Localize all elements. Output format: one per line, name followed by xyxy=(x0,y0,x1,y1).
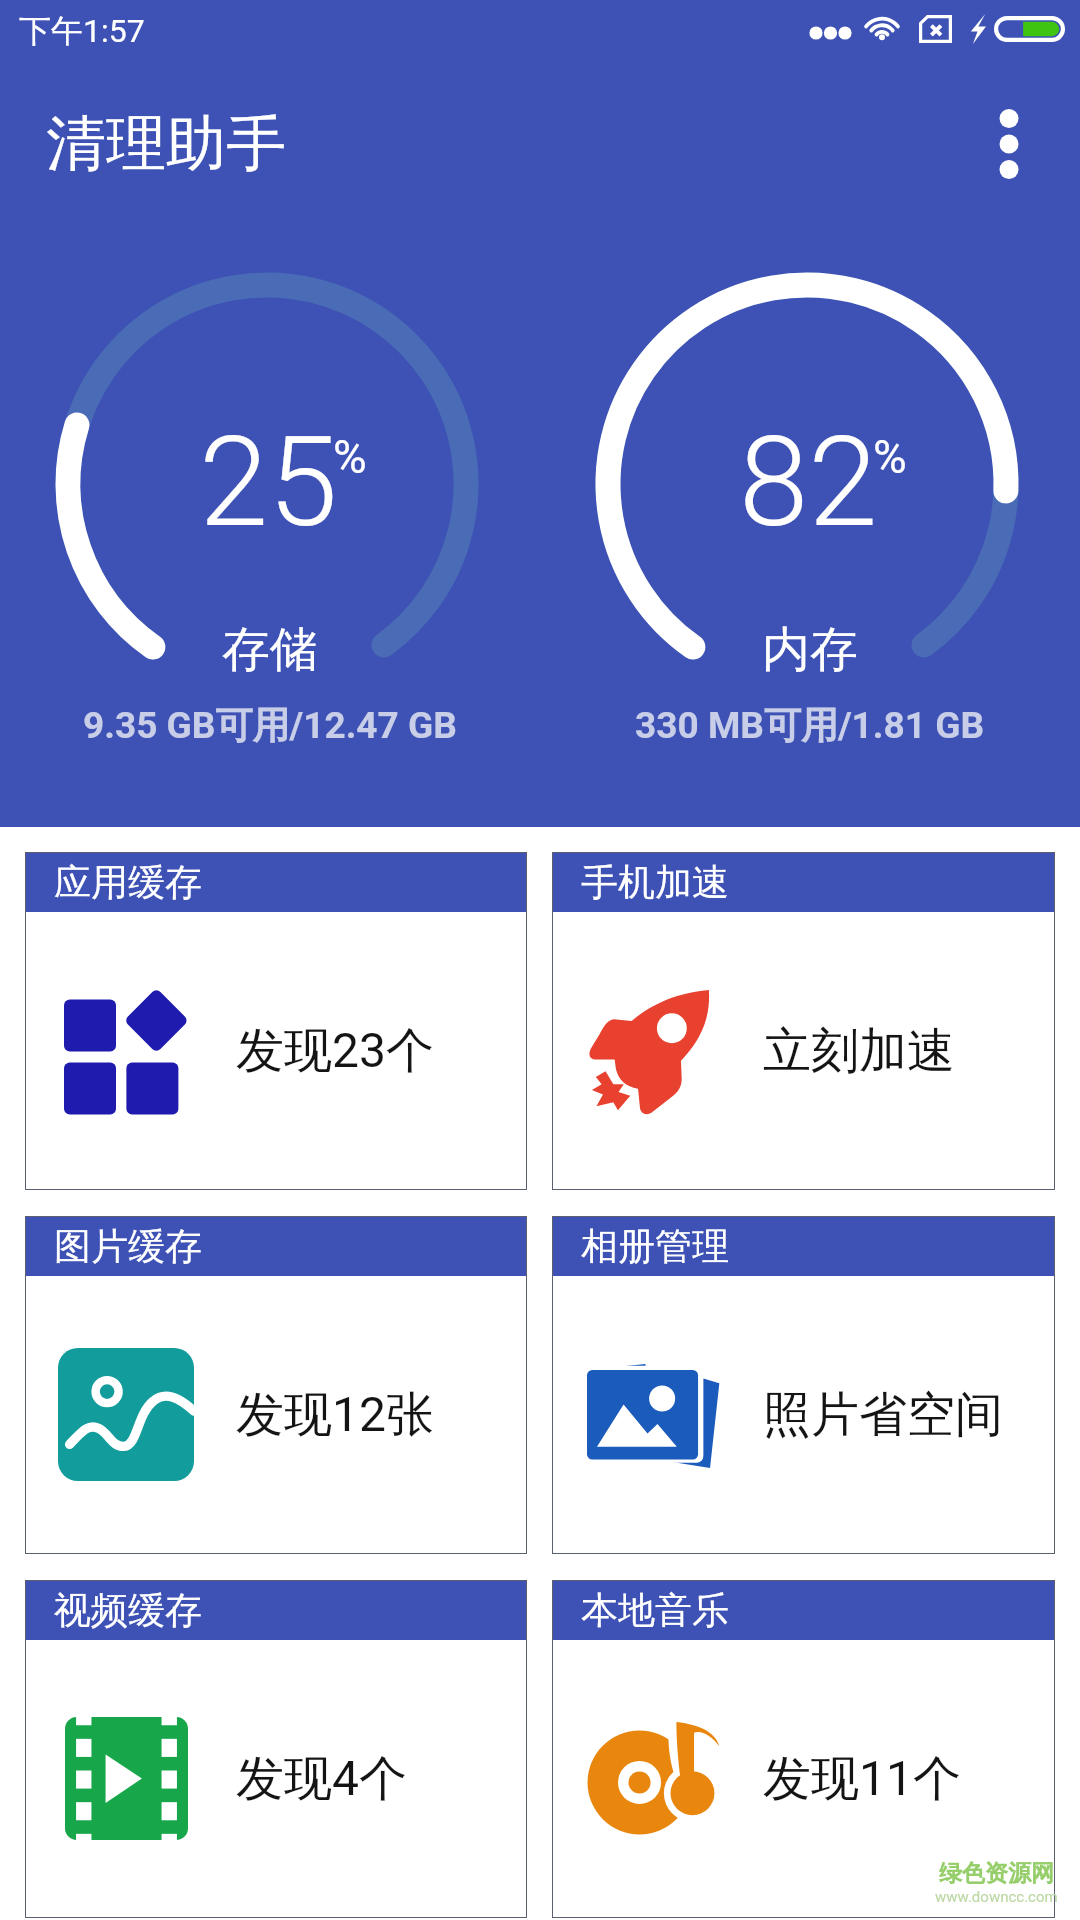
button[interactable]: 视频缓存 xyxy=(25,1580,527,1918)
button[interactable]: 图片缓存 xyxy=(25,1216,527,1554)
staticText: 图片缓存 xyxy=(54,1223,202,1270)
staticText: 照片省空间 xyxy=(763,1385,1003,1445)
staticText: 应用缓存 xyxy=(54,859,202,906)
staticText: 发现11个 xyxy=(763,1749,961,1809)
staticText: % xyxy=(873,430,907,484)
staticText: 82 xyxy=(739,409,878,555)
button[interactable]: 82 xyxy=(540,212,1080,772)
staticText: 发现12张 xyxy=(236,1385,434,1445)
button[interactable]: 手机加速 xyxy=(552,852,1055,1190)
staticText: % xyxy=(333,430,367,484)
staticText: 内存 xyxy=(762,620,858,680)
button[interactable]: 相册管理 xyxy=(552,1216,1055,1554)
staticText: 相册管理 xyxy=(581,1223,729,1270)
staticText: 绿色资源网 xyxy=(939,1859,1054,1888)
staticText: www.downcc.com xyxy=(935,1888,1058,1906)
staticText: 发现23个 xyxy=(236,1021,434,1081)
button[interactable]: More options xyxy=(954,89,1064,199)
staticText: 本地音乐 xyxy=(581,1587,729,1634)
staticText: 视频缓存 xyxy=(54,1587,202,1634)
button[interactable]: 25 xyxy=(0,212,540,772)
staticText: 发现4个 xyxy=(236,1749,407,1809)
staticText: 330 MB可用/1.81 GB xyxy=(635,702,985,749)
button[interactable]: 应用缓存 xyxy=(25,852,527,1190)
staticText: 清理助手 xyxy=(46,106,286,182)
staticText: 手机加速 xyxy=(581,859,729,906)
button[interactable]: 本地音乐 xyxy=(552,1580,1055,1918)
staticText: 25 xyxy=(199,409,338,555)
staticText: 立刻加速 xyxy=(763,1021,955,1081)
staticText: 存储 xyxy=(222,620,318,680)
staticText: 9.35 GB可用/12.47 GB xyxy=(83,702,457,749)
staticText: 下午1:57 xyxy=(19,11,145,51)
